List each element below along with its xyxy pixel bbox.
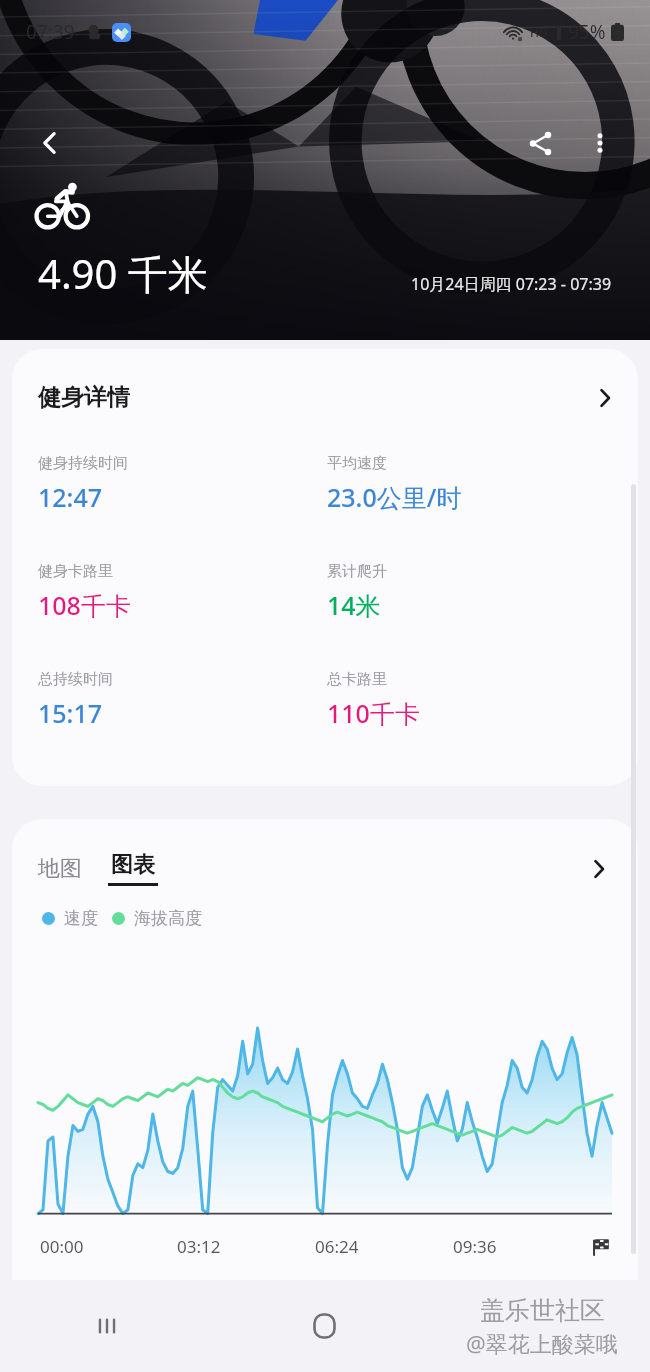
staticText: 12:47 [38,480,103,514]
button[interactable]: Share [516,119,564,167]
staticText: 00:00 [40,1235,84,1258]
button[interactable]: 健身详情 [12,349,638,786]
staticText: 07:39 [26,19,75,45]
button[interactable]: 图表 [108,851,158,886]
staticText: 108千卡 [38,588,131,622]
button[interactable]: Back [433,1280,650,1372]
button[interactable]: Home [216,1280,433,1372]
staticText: 总持续时间 [38,670,113,689]
staticText: 健身卡路里 [38,562,113,581]
staticText: @翠花上酸菜哦 [466,1328,618,1358]
staticText: HD [530,24,548,40]
staticText: 图表 [111,851,155,879]
staticText: 累计爬升 [327,562,387,581]
staticText: 海拔高度 [134,908,202,929]
staticText: 盖乐世社区 [480,1295,605,1326]
button[interactable]: 地图 [38,855,86,883]
staticText: 09:36 [453,1235,497,1258]
staticText: 健身详情 [38,383,130,412]
staticText: 23.0公里/时 [327,480,462,514]
staticText: 03:12 [177,1235,221,1258]
staticText: 10月24日周四 07:23 - 07:39 [411,273,612,295]
staticText: 14米 [327,588,381,622]
button[interactable]: Recents [0,1280,216,1372]
staticText: 健身持续时间 [38,454,128,473]
staticText: 06:24 [315,1235,359,1258]
button[interactable]: Open chart [582,852,616,886]
button[interactable]: More options [576,119,624,167]
staticText: 4.90 千米 [38,246,208,301]
staticText: 总卡路里 [327,670,387,689]
staticText: 110千卡 [327,696,420,730]
staticText: 95% [568,19,606,45]
staticText: 地图 [38,855,82,883]
staticText: 速度 [64,908,98,929]
staticText: 平均速度 [327,454,387,473]
button[interactable]: Back [26,119,74,167]
staticText: 15:17 [38,696,103,730]
